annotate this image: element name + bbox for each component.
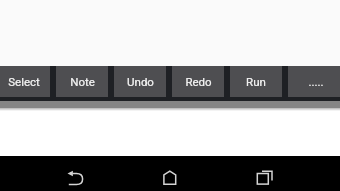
button[interactable]: Select xyxy=(0,66,50,97)
button[interactable]: Undo xyxy=(114,66,166,97)
staticText: Redo xyxy=(185,75,212,88)
button[interactable]: Recent apps xyxy=(251,163,279,191)
staticText: Undo xyxy=(127,75,154,88)
staticText: Select xyxy=(8,75,40,88)
staticText: Note xyxy=(70,75,95,88)
button[interactable]: Back xyxy=(62,163,90,191)
staticText: ..... xyxy=(308,75,324,88)
staticText: Run xyxy=(246,75,266,88)
button[interactable]: Redo xyxy=(172,66,224,97)
button[interactable]: Run xyxy=(230,66,282,97)
button[interactable]: ..... xyxy=(288,66,340,97)
button[interactable]: Note xyxy=(56,66,108,97)
button[interactable]: Home xyxy=(156,163,184,191)
